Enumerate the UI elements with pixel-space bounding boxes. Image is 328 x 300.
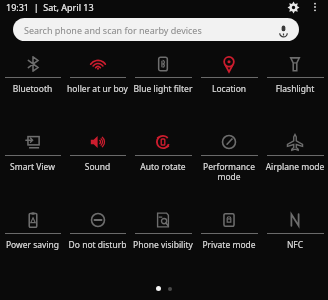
staticText: Location	[198, 83, 260, 95]
staticText: Auto rotate	[132, 161, 194, 173]
button[interactable]: Smart View	[0, 129, 65, 207]
button[interactable]: Auto rotate	[130, 129, 196, 207]
button[interactable]: Do not disturb	[65, 207, 130, 281]
staticText: Search phone and scan for nearby devices	[24, 24, 202, 36]
staticText: Performance mode	[198, 161, 260, 182]
staticText: Flashlight	[264, 83, 326, 95]
button[interactable]: Private mode	[196, 207, 262, 281]
button[interactable]: Bluetooth	[0, 51, 65, 129]
staticText: NFC	[264, 239, 326, 251]
staticText: Smart View	[2, 161, 63, 173]
staticText: Phone visibility	[132, 239, 194, 251]
staticText: holler at ur boy	[67, 83, 128, 95]
button[interactable]: More options	[308, 0, 322, 14]
staticText: Power saving	[2, 239, 63, 251]
button[interactable]: Flashlight	[262, 51, 328, 129]
staticText: Airplane mode	[264, 161, 326, 173]
button[interactable]: Airplane mode	[262, 129, 328, 207]
button[interactable]: Voice search	[275, 22, 291, 38]
staticText: Do not disturb	[67, 239, 128, 251]
staticText: Bluetooth	[2, 83, 63, 95]
button[interactable]: Power saving	[0, 207, 65, 281]
button[interactable]: Blue light filter	[130, 51, 196, 129]
button[interactable]: Phone visibility	[130, 207, 196, 281]
button[interactable]: holler at ur boy	[65, 51, 130, 129]
button[interactable]: Sound	[65, 129, 130, 207]
staticText: 19:31 | Sat, April 13	[6, 1, 94, 13]
button[interactable]: Settings	[284, 0, 302, 14]
staticText: Sound	[67, 161, 128, 173]
staticText: Blue light filter	[132, 83, 194, 95]
button[interactable]: Location	[196, 51, 262, 129]
button[interactable]: Performance mode	[196, 129, 262, 207]
button[interactable]: Search phone and scan for nearby devices	[13, 18, 299, 41]
button[interactable]: NFC	[262, 207, 328, 281]
staticText: Private mode	[198, 239, 260, 251]
